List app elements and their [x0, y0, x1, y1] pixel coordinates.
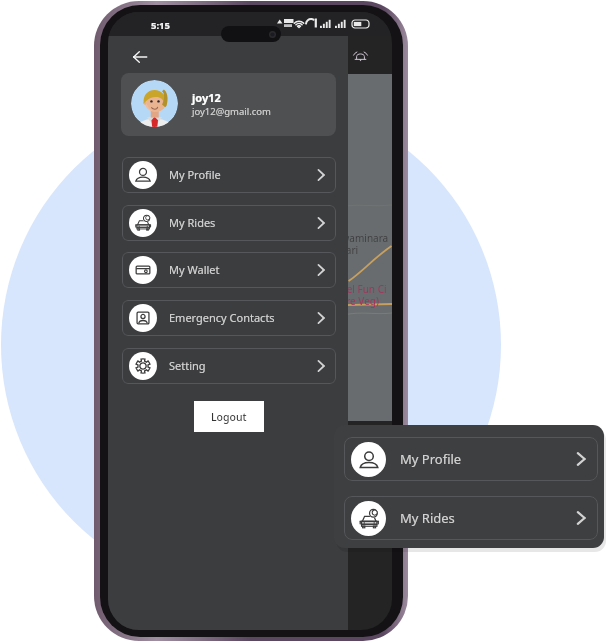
- staticText: Setting: [169, 358, 206, 373]
- button[interactable]: My Profile: [344, 437, 598, 481]
- button[interactable]: My Rides: [122, 205, 336, 241]
- staticText: My Profile: [169, 167, 221, 182]
- button[interactable]: joy12: [121, 73, 336, 136]
- button[interactable]: Notifications: [347, 43, 373, 69]
- button[interactable]: My Rides: [344, 496, 598, 540]
- staticText: My Wallet: [169, 262, 220, 277]
- button[interactable]: Back: [126, 44, 154, 69]
- button[interactable]: Setting: [122, 348, 336, 384]
- button[interactable]: Emergency Contacts: [122, 300, 336, 336]
- staticText: Swaminara: [336, 231, 389, 245]
- staticText: otel Fun Ci: [337, 282, 387, 296]
- staticText: Emergency Contacts: [169, 310, 275, 325]
- button[interactable]: My Profile: [122, 157, 336, 193]
- staticText: sari: [341, 243, 359, 257]
- staticText: ure Veg): [340, 294, 379, 308]
- staticText: Logout: [211, 410, 247, 424]
- staticText: joy12: [192, 90, 221, 105]
- staticText: joy12@gmail.com: [192, 105, 271, 118]
- button[interactable]: Logout: [194, 401, 264, 432]
- staticText: My Rides: [400, 509, 455, 527]
- button[interactable]: My Wallet: [122, 252, 336, 288]
- staticText: My Rides: [169, 215, 216, 230]
- staticText: My Profile: [400, 450, 462, 468]
- staticText: 5:15: [151, 19, 170, 32]
